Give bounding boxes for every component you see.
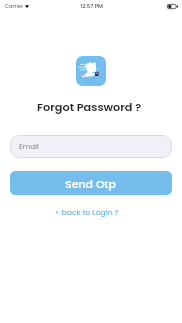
staticText: Send Otp xyxy=(65,176,117,191)
button[interactable]: Send Otp xyxy=(10,171,172,195)
staticText: Email xyxy=(19,141,39,151)
staticText: Carrier xyxy=(5,3,23,10)
button[interactable]: < back to Login ? xyxy=(49,204,125,221)
staticText: < back to Login ? xyxy=(55,207,119,218)
staticText: Forgot Password ? xyxy=(37,99,142,115)
staticText: 12:57 PM xyxy=(80,2,103,10)
button[interactable]: Email xyxy=(10,135,172,158)
